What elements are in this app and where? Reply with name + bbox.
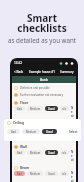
- staticText: n/a: [62, 107, 67, 111]
- staticText: Medium: [26, 130, 37, 134]
- staticText: Good: [48, 107, 55, 111]
- staticText: Defective unit possible: [20, 86, 50, 90]
- button[interactable]: Good: [45, 171, 58, 176]
- staticText: Summary: [60, 70, 74, 74]
- button[interactable]: Bad: [14, 106, 25, 111]
- staticText: as detailed as you want: [8, 36, 76, 44]
- staticText: Good: [48, 151, 55, 155]
- button[interactable]: Medium: [22, 129, 40, 134]
- staticText: Floor: [20, 101, 29, 105]
- staticText: Beam: [20, 166, 30, 170]
- staticText: Further evaluation not necessary: [20, 93, 64, 97]
- staticText: n/a: [62, 151, 67, 155]
- button[interactable]: Good: [45, 106, 58, 111]
- staticText: Medium: [30, 172, 41, 176]
- staticText: Bad: [11, 130, 16, 134]
- button[interactable]: Beam: [14, 165, 74, 171]
- staticText: Good: [46, 130, 53, 134]
- staticText: Bad: [17, 151, 22, 155]
- button[interactable]: Medium: [27, 171, 43, 176]
- staticText: Medium: [30, 151, 41, 155]
- staticText: Bad: [17, 107, 22, 111]
- staticText: Next: [71, 150, 74, 162]
- staticText: Medium: [30, 107, 41, 111]
- staticText: n/a: [62, 172, 67, 176]
- button[interactable]: Medium: [27, 150, 43, 155]
- button[interactable]: Medium: [27, 106, 43, 111]
- button[interactable]: Bad: [14, 150, 25, 155]
- button[interactable]: Good: [42, 129, 57, 134]
- button[interactable]: Floor: [14, 100, 74, 106]
- button[interactable]: n/a: [60, 150, 69, 155]
- staticText: Ceiling: [13, 121, 24, 125]
- button[interactable]: Good: [45, 150, 58, 155]
- staticText: < Back: [14, 70, 24, 74]
- staticText: Good: [48, 172, 55, 176]
- button[interactable]: Wall: [14, 144, 74, 150]
- staticText: Select: [69, 130, 78, 134]
- button[interactable]: Further evaluation not necessary: [14, 91, 74, 98]
- staticText: Smart checklists: [17, 11, 67, 35]
- staticText: Bank: [40, 78, 48, 82]
- staticText: Next: [71, 106, 74, 118]
- button[interactable]: Bad: [14, 171, 25, 176]
- staticText: Bad: [17, 172, 22, 176]
- button[interactable]: n/a: [60, 106, 69, 111]
- button[interactable]: Bad: [7, 129, 20, 134]
- button[interactable]: n/a: [60, 171, 69, 176]
- staticText: Wall: [20, 145, 27, 149]
- staticText: Next: [71, 171, 74, 182]
- staticText: 14:22: [14, 61, 23, 65]
- button[interactable]: Defective unit possible: [14, 84, 74, 91]
- button[interactable]: < Back: [14, 70, 24, 74]
- staticText: Example house #1: [29, 70, 55, 74]
